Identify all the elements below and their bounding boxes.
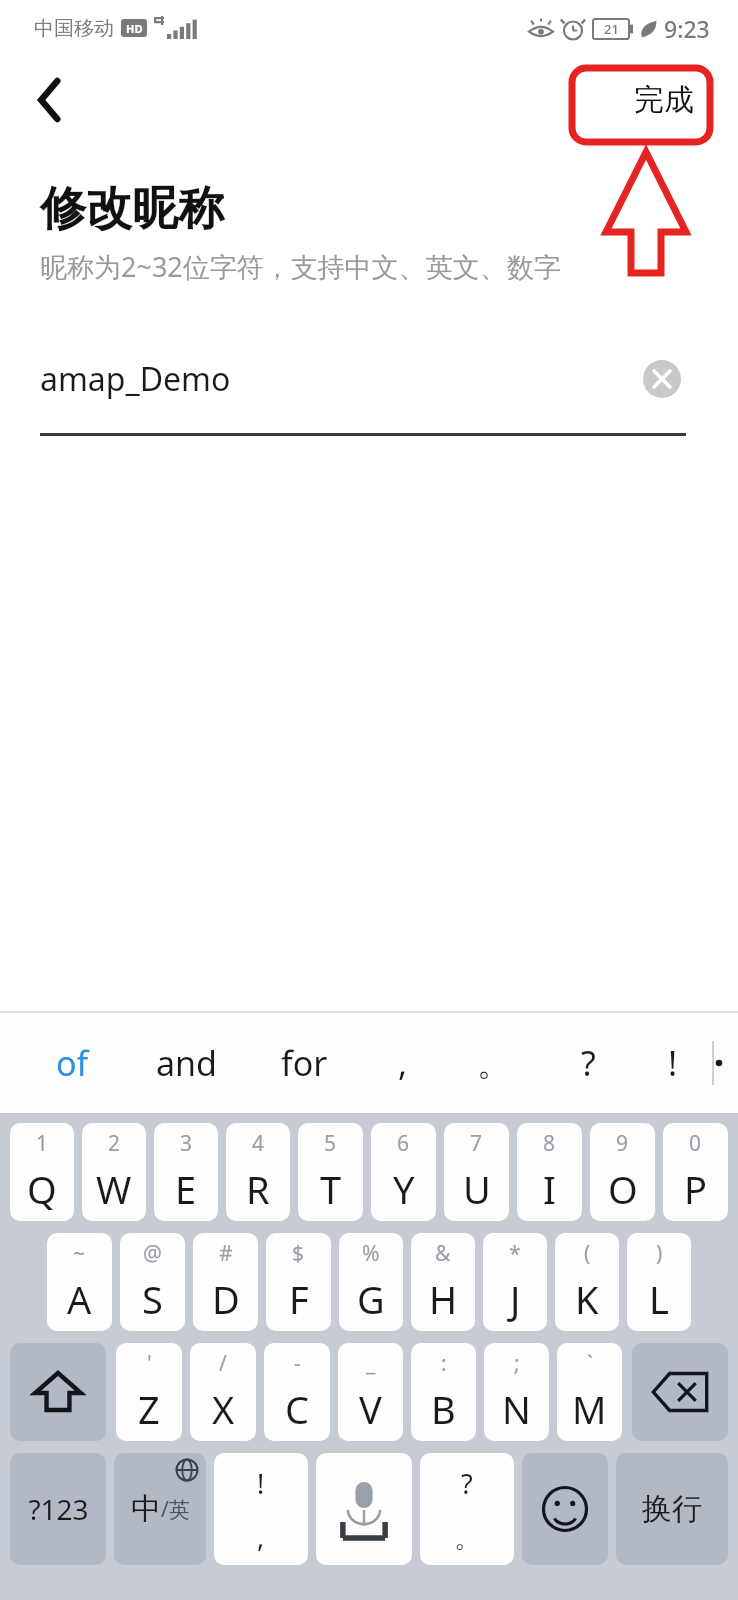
staticText: F [289, 1273, 309, 1325]
button[interactable]: and [124, 1013, 248, 1113]
button[interactable]: % [339, 1233, 403, 1331]
button[interactable]: ! [634, 1013, 712, 1113]
button[interactable]: & [411, 1233, 475, 1331]
button[interactable]: Emoji [522, 1453, 608, 1565]
button[interactable]: Close keyboard [714, 1013, 724, 1113]
button[interactable]: @ [120, 1233, 185, 1331]
button[interactable]: * [483, 1233, 547, 1331]
staticText: - [294, 1349, 301, 1378]
button[interactable]: Shift [10, 1343, 106, 1441]
button[interactable]: 换行 [616, 1453, 728, 1565]
button[interactable]: , [360, 1013, 446, 1113]
staticText: ! [668, 1040, 678, 1086]
button[interactable]: ~ [47, 1233, 112, 1331]
staticText: 6 [397, 1129, 410, 1158]
staticText: ` [587, 1349, 593, 1378]
button[interactable]: of [20, 1013, 124, 1113]
staticText: ?123 [28, 1490, 89, 1528]
button[interactable]: Space [316, 1453, 412, 1565]
staticText: S [142, 1273, 163, 1325]
staticText: _ [366, 1349, 376, 1378]
staticText: 4 [252, 1129, 265, 1158]
button[interactable]: ' [116, 1343, 182, 1441]
button[interactable]: Switch language [114, 1453, 206, 1565]
staticText: W [96, 1163, 132, 1215]
staticText: 9 [616, 1129, 629, 1158]
staticText: ? [461, 1465, 473, 1502]
staticText: ~ [73, 1239, 86, 1268]
staticText: ; [514, 1349, 520, 1378]
staticText: 中国移动 [34, 16, 114, 41]
button[interactable]: 1 [10, 1123, 74, 1221]
staticText: H [429, 1273, 458, 1325]
staticText: J [510, 1273, 521, 1325]
staticText: M [572, 1383, 607, 1435]
button[interactable]: ` [557, 1343, 622, 1441]
staticText: 。 [454, 1521, 481, 1555]
button[interactable]: 完成 [624, 73, 704, 127]
button[interactable]: 6 [371, 1123, 436, 1221]
staticText: C [285, 1383, 310, 1435]
button[interactable]: - [264, 1343, 330, 1441]
staticText: 5 [324, 1129, 337, 1158]
button[interactable]: # [193, 1233, 258, 1331]
staticText: E [175, 1163, 197, 1215]
staticText: T [320, 1163, 342, 1215]
staticText: /英 [161, 1495, 190, 1524]
button[interactable]: 3 [154, 1123, 218, 1221]
button[interactable]: 5 [298, 1123, 363, 1221]
button[interactable]: 。 [446, 1013, 542, 1113]
button[interactable]: Backspace [632, 1343, 728, 1441]
button[interactable]: / [190, 1343, 256, 1441]
staticText: I [543, 1163, 556, 1215]
button[interactable]: $ [266, 1233, 331, 1331]
staticText: ! [257, 1465, 265, 1502]
button[interactable]: ? [420, 1453, 514, 1565]
staticText: O [608, 1163, 638, 1215]
staticText: 。 [477, 1042, 511, 1085]
staticText: Q [27, 1163, 57, 1215]
staticText: 0 [689, 1129, 702, 1158]
staticText: K [575, 1273, 599, 1325]
staticText: 21 [604, 20, 619, 38]
button[interactable]: ) [627, 1233, 691, 1331]
button[interactable]: 9 [590, 1123, 655, 1221]
button[interactable]: 0 [663, 1123, 728, 1221]
button[interactable]: Back [18, 68, 82, 132]
staticText: @ [143, 1239, 162, 1268]
staticText: / [219, 1349, 227, 1378]
button[interactable]: ; [484, 1343, 549, 1441]
staticText: * [509, 1239, 521, 1268]
button[interactable]: 4 [226, 1123, 290, 1221]
button[interactable]: for [248, 1013, 360, 1113]
button[interactable]: ?123 [10, 1453, 106, 1565]
staticText: 1 [36, 1129, 49, 1158]
staticText: N [502, 1383, 531, 1435]
staticText: : [441, 1349, 447, 1378]
button[interactable]: ? [542, 1013, 634, 1113]
staticText: Z [138, 1383, 160, 1435]
staticText: 3 [180, 1129, 193, 1158]
button[interactable]: ( [555, 1233, 619, 1331]
button[interactable]: : [411, 1343, 476, 1441]
staticText: & [435, 1239, 451, 1268]
staticText: 修改昵称 [40, 180, 224, 238]
staticText: B [431, 1383, 456, 1435]
button[interactable]: _ [338, 1343, 403, 1441]
staticText: amap_Demo [40, 357, 231, 401]
button[interactable]: Clear text [638, 355, 686, 403]
staticText: 中 [131, 1490, 161, 1528]
staticText: 完成 [634, 81, 694, 119]
button[interactable]: 8 [517, 1123, 582, 1221]
staticText: and [156, 1040, 217, 1086]
staticText: X [212, 1383, 235, 1435]
button[interactable]: 2 [82, 1123, 146, 1221]
staticText: A [67, 1273, 92, 1325]
staticText: Y [393, 1163, 415, 1215]
button[interactable]: ! [214, 1453, 308, 1565]
staticText: of [56, 1040, 89, 1086]
staticText: R [246, 1163, 270, 1215]
button[interactable]: 7 [444, 1123, 509, 1221]
staticText: L [649, 1273, 669, 1325]
staticText: HD [126, 21, 143, 36]
